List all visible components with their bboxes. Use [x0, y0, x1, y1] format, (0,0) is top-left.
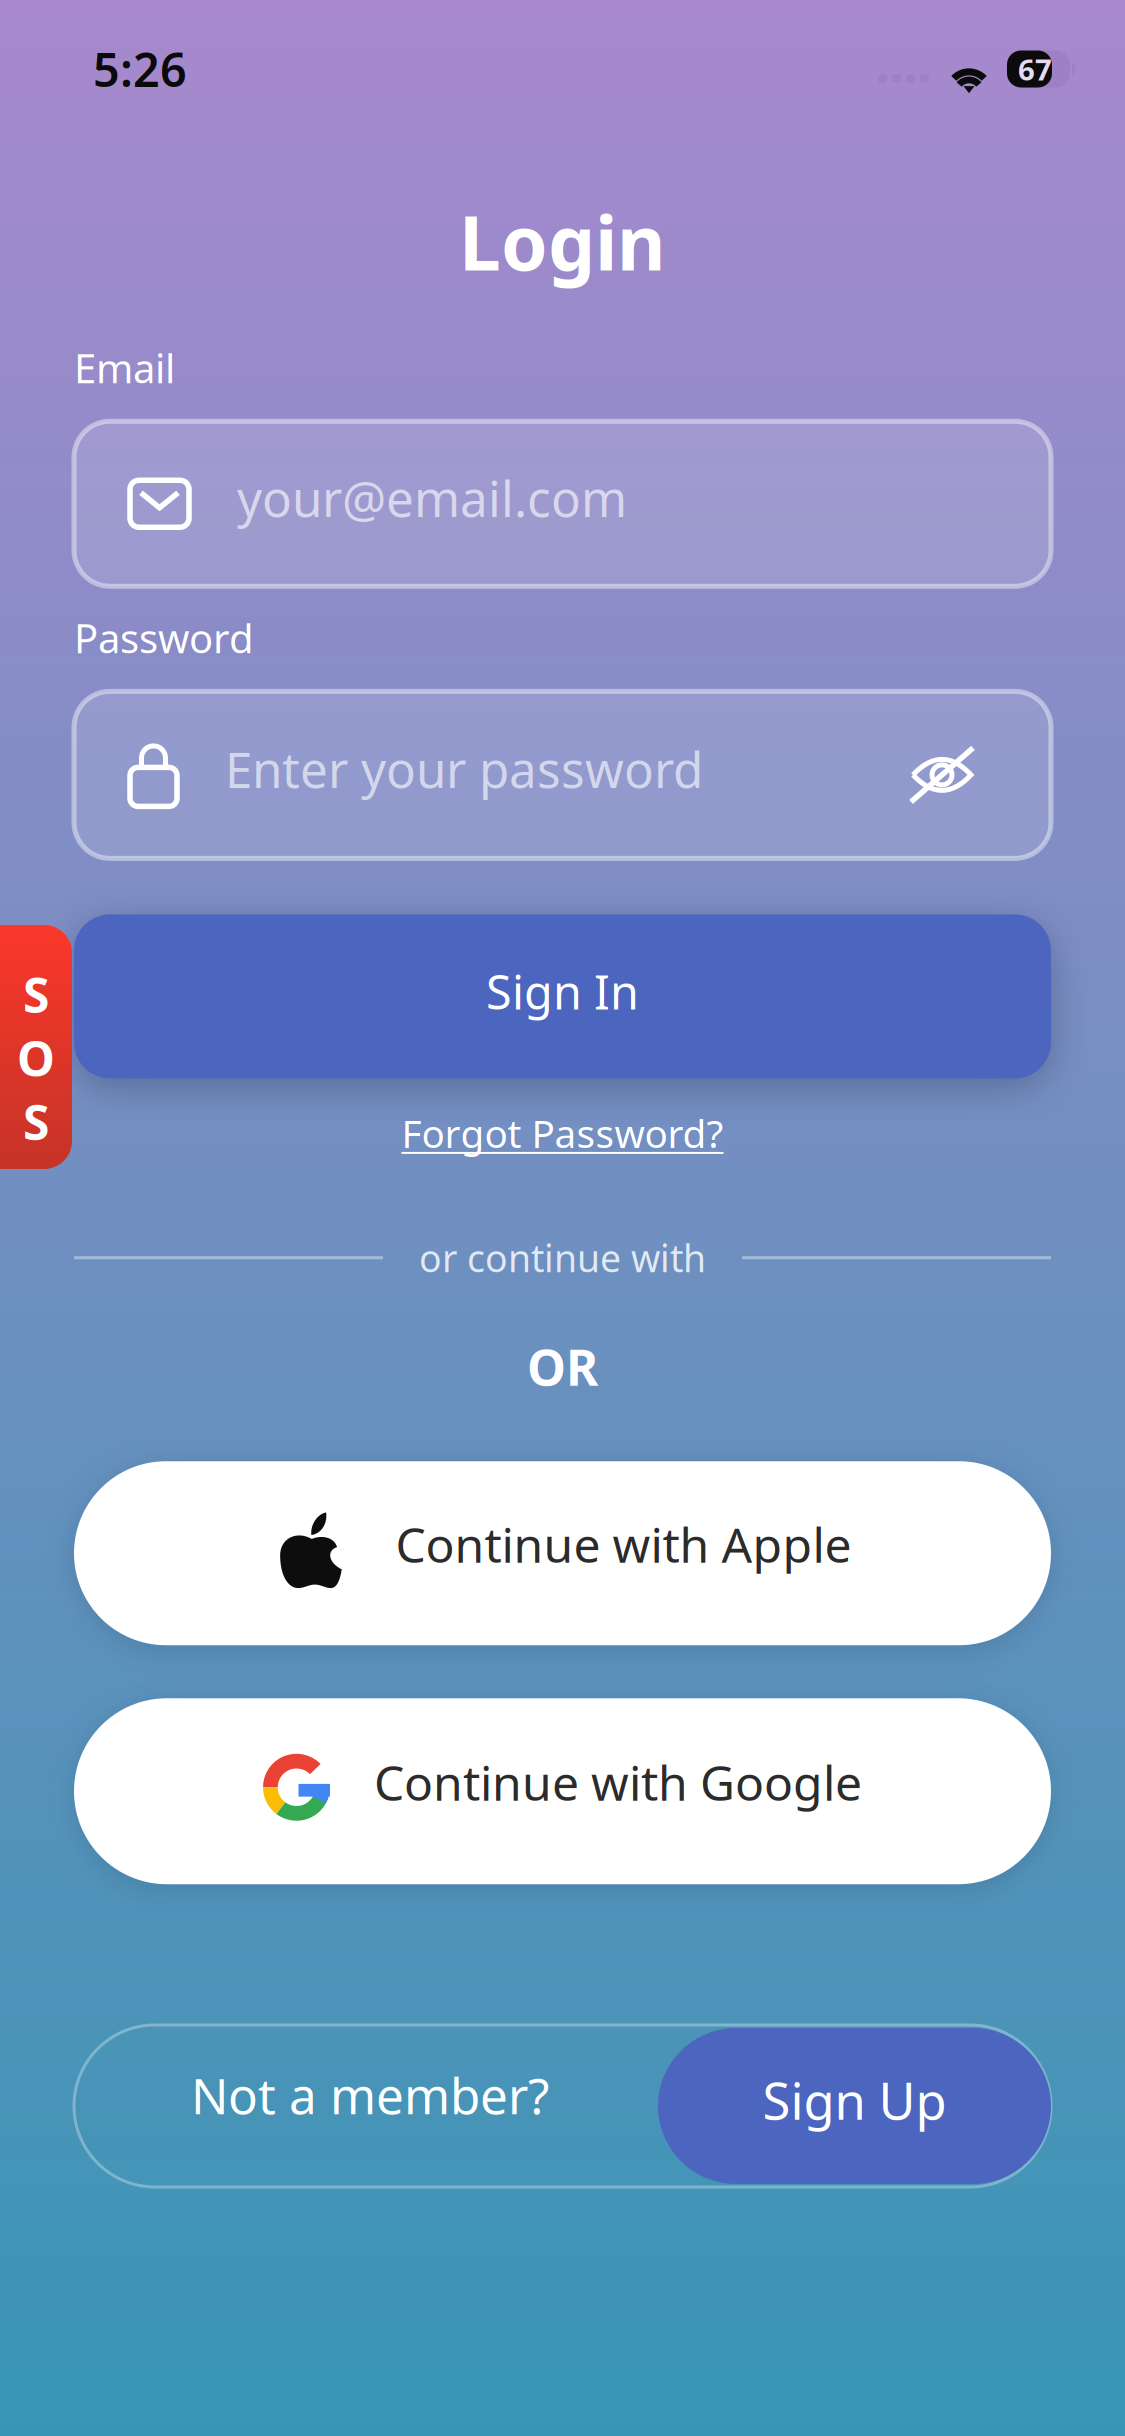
button[interactable]: SOS: [0, 926, 72, 1168]
staticText: Sign Up: [762, 2066, 946, 2134]
button[interactable]: Sign In: [74, 914, 1051, 1078]
button[interactable]: Forgot Password?: [401, 1107, 723, 1159]
staticText: OR: [527, 1334, 598, 1399]
button[interactable]: Show password: [910, 749, 974, 801]
button[interactable]: Sign Up: [658, 2028, 1051, 2184]
staticText: Continue with Google: [374, 1750, 862, 1814]
staticText: Login: [459, 192, 666, 291]
staticText: or continue with: [419, 1233, 706, 1282]
staticText: Forgot Password?: [401, 1107, 723, 1159]
staticText: S: [23, 1090, 49, 1154]
staticText: Enter your password: [225, 736, 703, 802]
button[interactable]: Continue with Apple: [74, 1461, 1051, 1645]
button[interactable]: Continue with Google: [74, 1698, 1051, 1884]
staticText: Continue with Apple: [395, 1512, 851, 1576]
staticText: 67: [1018, 49, 1052, 88]
staticText: O: [17, 1026, 55, 1090]
staticText: 5:26: [93, 38, 187, 100]
staticText: S: [23, 962, 49, 1026]
staticText: Password: [74, 611, 254, 664]
staticText: Sign In: [486, 960, 639, 1022]
staticText: Not a member?: [191, 2062, 549, 2128]
staticText: your@email.com: [237, 465, 627, 530]
staticText: Email: [74, 341, 175, 394]
